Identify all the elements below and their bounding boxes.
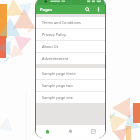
button[interactable]: Sample page three: [36, 68, 105, 79]
button[interactable]: More options: [95, 6, 102, 13]
button[interactable]: Sample page two: [36, 80, 105, 91]
staticText: Terms and Conditions: [42, 20, 81, 25]
staticText: Privacy Policy: [42, 32, 66, 37]
staticText: Advertisement: [42, 56, 69, 61]
button[interactable]: Advertisement: [36, 53, 105, 64]
button[interactable]: Search: [84, 6, 91, 13]
button[interactable]: Sample page one: [36, 92, 105, 103]
staticText: Pages: [40, 7, 52, 13]
button[interactable]: Home: [36, 125, 59, 138]
button[interactable]: Notifications: [59, 125, 82, 138]
button[interactable]: Terms and Conditions: [36, 17, 105, 28]
button[interactable]: Privacy Policy: [36, 29, 105, 40]
button[interactable]: About Us: [36, 41, 105, 52]
staticText: Sample page one: [42, 95, 73, 100]
staticText: About Us: [42, 44, 59, 49]
button[interactable]: Settings: [82, 125, 105, 138]
staticText: Sample page two: [42, 83, 73, 88]
staticText: Sample page three: [42, 71, 76, 76]
